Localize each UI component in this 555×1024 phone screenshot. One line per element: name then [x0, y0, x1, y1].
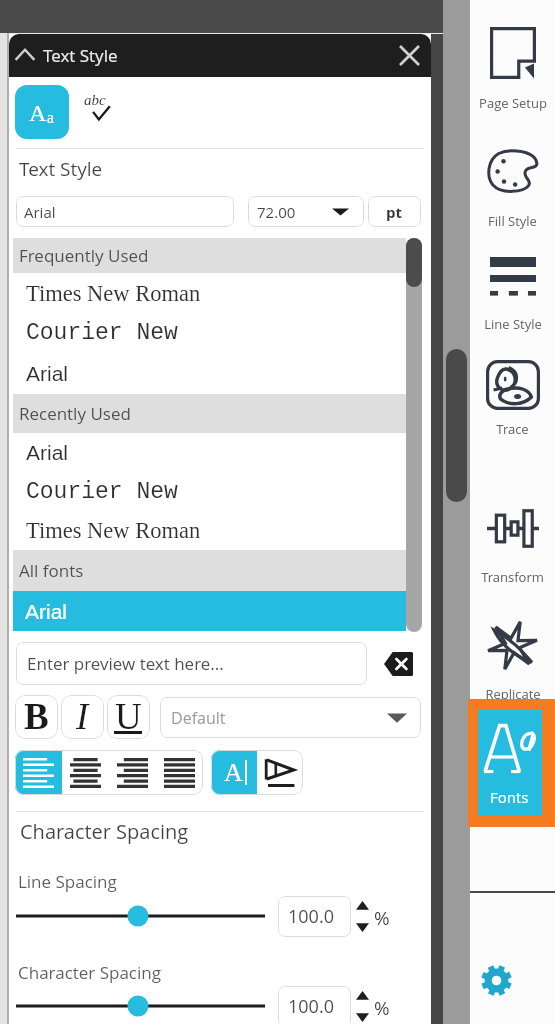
staticText: A: [224, 758, 243, 787]
button[interactable]: Courier New: [13, 313, 406, 353]
button[interactable]: Line Style: [470, 238, 555, 335]
staticText: Recently Used: [19, 402, 131, 425]
button[interactable]: Arial: [13, 353, 406, 394]
button[interactable]: Text style: [15, 85, 69, 139]
button[interactable]: Fill Style: [470, 130, 555, 232]
staticText: B: [24, 696, 49, 737]
staticText: Arial: [24, 202, 56, 222]
staticText: Line Spacing: [18, 870, 117, 893]
staticText: %: [374, 905, 390, 931]
button[interactable]: Recently Used: [13, 394, 406, 433]
button[interactable]: Times New Roman: [13, 273, 406, 313]
staticText: Replicate: [485, 685, 541, 703]
staticText: a: [47, 109, 55, 127]
staticText: Text Style: [19, 156, 103, 182]
button[interactable]: Page Setup: [470, 12, 555, 114]
staticText: Text Style: [43, 44, 118, 67]
staticText: Courier New: [26, 320, 178, 346]
staticText: Trace: [496, 420, 529, 438]
button[interactable]: Enter preview text here...: [16, 642, 367, 685]
button[interactable]: Arial: [13, 591, 406, 631]
staticText: abc: [84, 92, 106, 109]
button[interactable]: Text Style: [9, 34, 431, 77]
button[interactable]: Align right: [109, 750, 156, 795]
staticText: 100.0: [288, 994, 334, 1019]
button[interactable]: Fonts: [468, 699, 555, 827]
button[interactable]: 100.0: [278, 896, 351, 937]
button[interactable]: Align left: [15, 750, 62, 795]
button[interactable]: B: [15, 695, 58, 739]
button[interactable]: pt: [368, 196, 421, 227]
staticText: 100.0: [288, 904, 334, 929]
button[interactable]: Replicate: [470, 606, 555, 705]
button[interactable]: [16, 904, 268, 928]
button[interactable]: Clear preview text: [384, 652, 413, 676]
staticText: All fonts: [19, 559, 84, 582]
button[interactable]: Justify: [156, 750, 203, 795]
staticText: Frequently Used: [19, 244, 149, 267]
staticText: Character Spacing: [20, 818, 189, 845]
button[interactable]: 100.0: [278, 986, 351, 1024]
button[interactable]: Transform: [470, 488, 555, 588]
staticText: Arial: [26, 362, 69, 385]
button[interactable]: Spell check: [81, 94, 123, 128]
staticText: Transform: [481, 568, 544, 586]
button[interactable]: Vertical text: [257, 750, 303, 795]
button[interactable]: I: [61, 695, 104, 739]
staticText: Fonts: [490, 787, 529, 807]
staticText: U: [115, 696, 142, 737]
button[interactable]: Times New Roman: [13, 511, 406, 550]
button[interactable]: Align center: [62, 750, 109, 795]
button[interactable]: All fonts: [13, 550, 406, 591]
staticText: Character Spacing: [18, 961, 161, 984]
staticText: Enter preview text here...: [27, 652, 224, 675]
staticText: Fill Style: [488, 212, 537, 230]
staticText: 72.00: [257, 202, 296, 222]
staticText: pt: [386, 202, 403, 222]
staticText: A: [29, 100, 47, 127]
staticText: Default: [171, 707, 226, 729]
button[interactable]: Default: [160, 697, 421, 738]
staticText: Page Setup: [479, 94, 547, 112]
staticText: Times New Roman: [26, 281, 201, 306]
button[interactable]: Trace: [470, 350, 555, 440]
button[interactable]: [16, 994, 268, 1018]
staticText: Times New Roman: [26, 518, 201, 543]
button[interactable]: Settings: [474, 958, 518, 1002]
button[interactable]: Frequently Used: [13, 238, 406, 273]
staticText: Courier New: [26, 479, 178, 505]
button[interactable]: Horizontal text: [211, 750, 257, 795]
button[interactable]: U: [107, 695, 150, 739]
staticText: Arial: [25, 600, 68, 623]
staticText: Arial: [26, 441, 69, 464]
staticText: I: [76, 696, 89, 737]
button[interactable]: Arial: [13, 433, 406, 472]
button[interactable]: Arial: [16, 196, 234, 227]
button[interactable]: Close: [388, 34, 431, 77]
staticText: Line Style: [484, 315, 542, 333]
button[interactable]: Courier New: [13, 472, 406, 511]
staticText: %: [374, 995, 390, 1021]
button[interactable]: 72.00: [248, 196, 364, 227]
